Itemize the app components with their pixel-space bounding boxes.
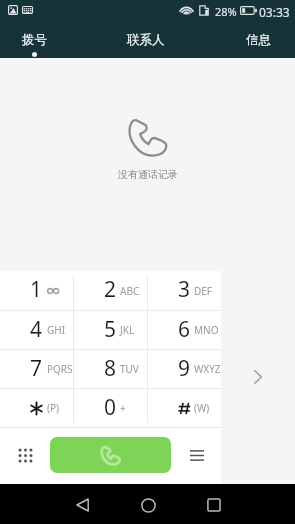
staticText: 联系人 [127, 32, 165, 48]
staticText: 9 [178, 354, 191, 383]
staticText: 4 [30, 315, 43, 344]
staticText: 拨号 [22, 32, 47, 48]
staticText: (P) [47, 401, 60, 415]
staticText: 28% [215, 4, 237, 19]
staticText: 6 [178, 315, 191, 344]
staticText: + [120, 401, 126, 415]
button[interactable]: Keypad [8, 427, 43, 484]
staticText: 没有通话记录 [118, 168, 178, 181]
staticText: 1 [30, 275, 43, 304]
button[interactable]: 3 [147, 271, 221, 310]
button[interactable]: 4 [0, 311, 73, 349]
button[interactable]: Call [50, 437, 171, 473]
button[interactable]: 5 [73, 311, 147, 349]
button[interactable]: Show more [240, 359, 276, 395]
staticText: WXYZ [194, 362, 221, 376]
button[interactable]: (P) [0, 389, 73, 427]
staticText: (W) [194, 401, 210, 415]
staticText: 3 [178, 275, 191, 304]
staticText: PQRS [47, 362, 73, 376]
button[interactable]: 0 [73, 389, 147, 427]
staticText: GHI [47, 323, 66, 337]
staticText: ABC [120, 284, 140, 298]
button[interactable]: 6 [147, 311, 221, 349]
button[interactable]: 拨号 [0, 21, 78, 58]
staticText: MNO [194, 323, 219, 337]
staticText: 5 [104, 315, 117, 344]
staticText: 信息 [246, 32, 271, 48]
button[interactable]: (W) [147, 389, 221, 427]
staticText: 7 [30, 354, 43, 383]
button[interactable]: 联系人 [102, 21, 190, 58]
button[interactable]: Back [49, 484, 115, 524]
button[interactable]: 7 [0, 350, 73, 388]
button[interactable]: Menu [179, 427, 214, 484]
button[interactable]: 9 [147, 350, 221, 388]
staticText: 2 [104, 275, 117, 304]
button[interactable]: Recents [181, 484, 247, 524]
staticText: 8 [104, 354, 117, 383]
staticText: 03:33 [259, 4, 290, 20]
button[interactable]: 信息 [214, 21, 295, 58]
staticText: TUV [120, 362, 139, 376]
button[interactable]: 1 [0, 271, 73, 310]
button[interactable]: Home [115, 484, 181, 524]
button[interactable]: 2 [73, 271, 147, 310]
staticText: DEF [194, 284, 213, 298]
staticText: 0 [104, 393, 117, 422]
staticText: JKL [120, 323, 135, 337]
button[interactable]: 8 [73, 350, 147, 388]
